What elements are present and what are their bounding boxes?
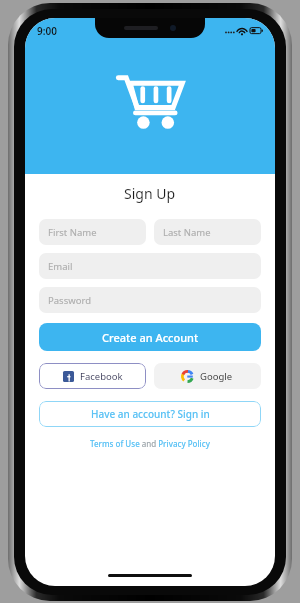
staticText: Sign Up [124,184,176,203]
button[interactable]: Have an account? Sign in [39,401,261,427]
button[interactable]: Google [154,363,261,389]
button[interactable]: Password [39,287,261,313]
button[interactable]: First Name [39,219,146,245]
staticText: Terms of Use and Privacy Policy [90,438,210,449]
staticText: Have an account? Sign in [91,407,210,421]
staticText: Google [200,370,233,383]
button[interactable]: Last Name [154,219,261,245]
staticText: 9:00 [37,24,57,38]
staticText: First Name [48,226,97,239]
button[interactable]: Create an Account [39,323,261,351]
button[interactable]: Email [39,253,261,279]
staticText: Create an Account [102,330,199,345]
staticText: Email [48,260,73,273]
button[interactable]: Facebook [39,363,146,389]
staticText: Last Name [163,226,211,239]
staticText: Facebook [80,370,123,383]
staticText: Password [48,294,91,307]
